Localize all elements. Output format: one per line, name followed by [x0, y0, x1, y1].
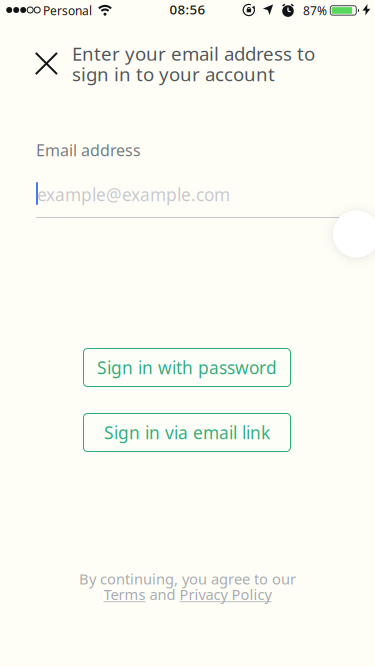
staticText: Personal: [43, 3, 92, 18]
button[interactable]: Chat: [333, 210, 375, 257]
staticText: sign in to your account: [72, 62, 275, 86]
staticText: Sign in via email link: [104, 421, 270, 444]
button[interactable]: Close: [24, 41, 68, 85]
staticText: Terms: [103, 584, 145, 604]
staticText: By continuing, you agree to our: [79, 569, 296, 588]
staticText: Enter your email address to: [72, 41, 315, 66]
staticText: Privacy Policy: [179, 584, 271, 604]
staticText: example@example.com: [37, 183, 230, 206]
staticText: Sign in with password: [97, 356, 277, 379]
button[interactable]: Sign in with password: [83, 348, 290, 386]
staticText: 87%: [303, 3, 327, 18]
button[interactable]: Email address: [36, 180, 339, 218]
staticText: and: [145, 584, 179, 604]
button[interactable]: Privacy Policy: [179, 584, 271, 604]
button[interactable]: Sign in via email link: [83, 413, 290, 451]
staticText: 08:56: [169, 0, 205, 18]
button[interactable]: Terms: [103, 584, 145, 604]
staticText: Email address: [36, 139, 141, 160]
